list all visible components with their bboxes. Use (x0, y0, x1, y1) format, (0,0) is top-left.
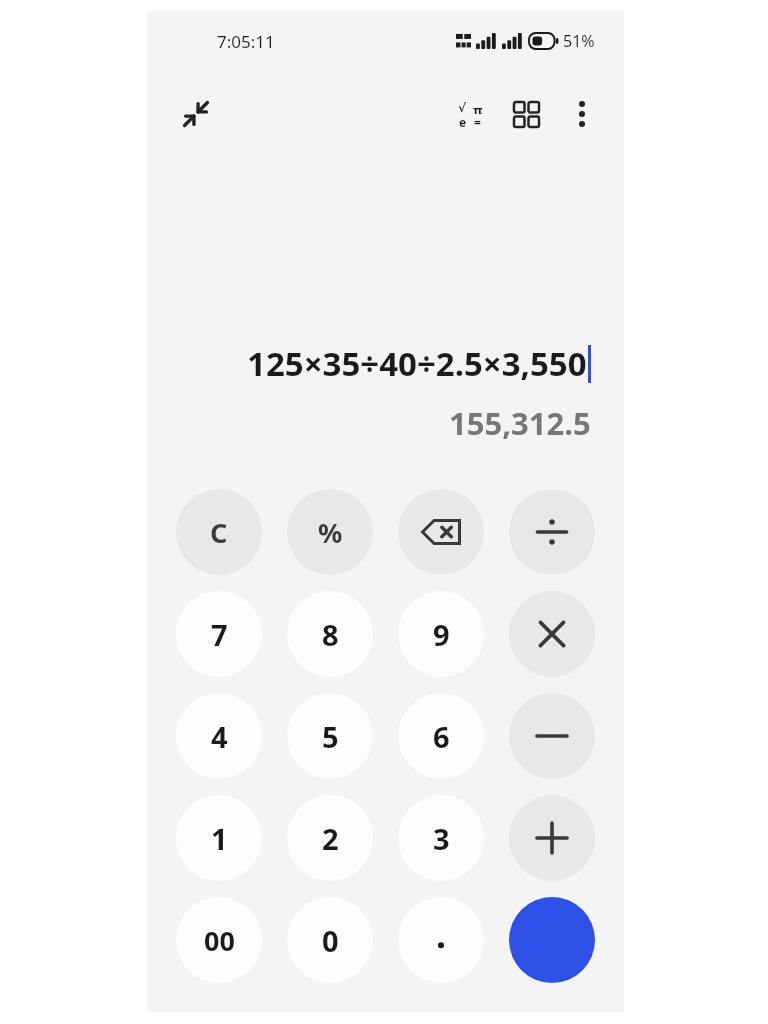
staticText: 125×35÷40÷2.5×3,550 (247, 341, 587, 386)
button[interactable]: Clear (176, 489, 262, 575)
staticText: = (474, 114, 481, 127)
button[interactable]: Collapse (168, 86, 224, 142)
staticText: C (210, 514, 228, 551)
staticText: 6 (433, 717, 450, 756)
button[interactable]: 7 (176, 591, 262, 677)
button[interactable]: Plus (509, 795, 595, 881)
staticText: % (318, 514, 343, 551)
staticText: 5 (322, 717, 339, 756)
staticText: 2 (322, 819, 339, 858)
staticText: 51% (563, 30, 595, 52)
button[interactable]: 0 (287, 897, 373, 983)
staticText: 0 (322, 921, 339, 960)
staticText: 1 (211, 819, 228, 858)
button[interactable]: 6 (398, 693, 484, 779)
staticText: √ (458, 101, 467, 114)
button[interactable]: Scientific mode (442, 86, 498, 142)
staticText: 3 (433, 819, 450, 858)
button[interactable]: More options (554, 86, 610, 142)
button[interactable]: 9 (398, 591, 484, 677)
staticText: 00 (204, 922, 235, 959)
staticText: 155,312.5 (449, 402, 591, 444)
staticText: 4 (211, 717, 228, 756)
button[interactable]: 4 (176, 693, 262, 779)
button[interactable]: 3 (398, 795, 484, 881)
staticText: 7 (211, 615, 228, 654)
button[interactable]: 00 (176, 897, 262, 983)
button[interactable]: 1 (176, 795, 262, 881)
button[interactable]: Converters (498, 86, 554, 142)
button[interactable]: 5 (287, 693, 373, 779)
button[interactable]: % (287, 489, 373, 575)
staticText: 8 (322, 615, 339, 654)
button[interactable]: 2 (287, 795, 373, 881)
button[interactable]: Backspace (398, 489, 484, 575)
button[interactable]: Minus (509, 693, 595, 779)
staticText: 9 (433, 615, 450, 654)
staticText: 7:05:11 (217, 30, 275, 53)
button[interactable]: Decimal point (398, 897, 484, 983)
button[interactable]: 8 (287, 591, 373, 677)
button[interactable]: Multiply (509, 591, 595, 677)
button[interactable]: Divide (509, 489, 595, 575)
staticText: e (459, 114, 467, 127)
staticText: π (473, 101, 483, 114)
button[interactable]: Equals (509, 897, 595, 983)
